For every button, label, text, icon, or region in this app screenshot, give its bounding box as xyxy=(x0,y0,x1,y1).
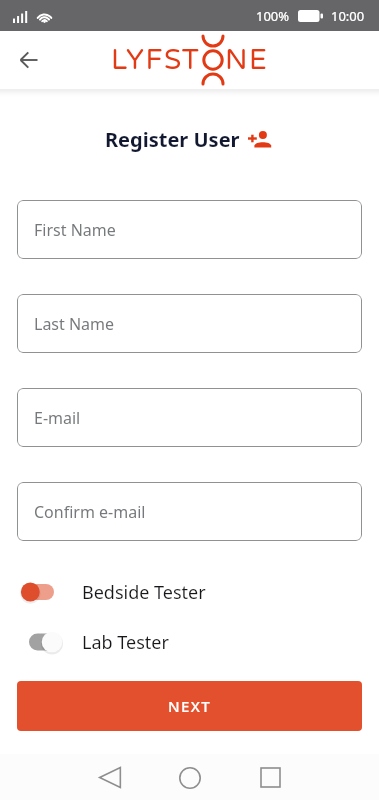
button[interactable]: Back xyxy=(10,39,52,81)
staticText: Lab Tester xyxy=(82,630,169,655)
button[interactable]: Last Name xyxy=(17,294,362,353)
button[interactable]: Home xyxy=(167,755,212,800)
staticText: LYFST xyxy=(111,43,201,77)
staticText: Register User xyxy=(105,126,240,153)
staticText: 10:00 xyxy=(331,7,365,25)
button[interactable]: Lab Tester xyxy=(0,625,379,659)
staticText: Confirm e-mail xyxy=(34,501,146,523)
button[interactable]: Bedside Tester xyxy=(0,575,379,609)
button[interactable]: NEXT xyxy=(17,681,362,731)
staticText: Bedside Tester xyxy=(82,580,206,605)
staticText: First Name xyxy=(34,219,116,241)
button[interactable]: Back xyxy=(87,755,132,800)
staticText: NEXT xyxy=(168,696,212,716)
staticText: E-mail xyxy=(34,407,81,429)
staticText: 100% xyxy=(256,7,290,25)
button[interactable]: First Name xyxy=(17,200,362,259)
button[interactable]: Confirm e-mail xyxy=(17,482,362,541)
button[interactable]: Recents xyxy=(248,755,293,800)
staticText: Last Name xyxy=(34,313,115,335)
staticText: NE xyxy=(225,43,269,77)
button[interactable]: E-mail xyxy=(17,388,362,447)
